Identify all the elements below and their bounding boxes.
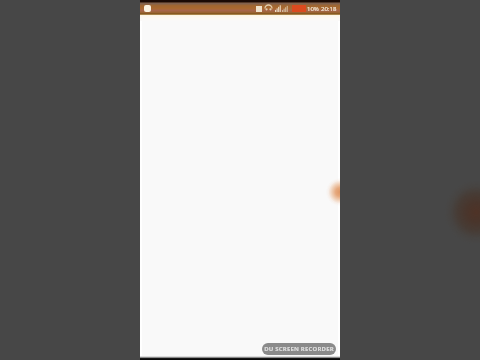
staticText: DU SCREEN RECORDER xyxy=(264,345,334,353)
button[interactable]: Headphones xyxy=(265,5,272,12)
button[interactable]: Compose xyxy=(324,176,340,208)
button[interactable]: Notification xyxy=(144,5,151,12)
button[interactable]: DU SCREEN RECORDER xyxy=(262,343,336,355)
staticText: 20:18 xyxy=(321,5,337,13)
staticText: 10% xyxy=(307,5,319,13)
